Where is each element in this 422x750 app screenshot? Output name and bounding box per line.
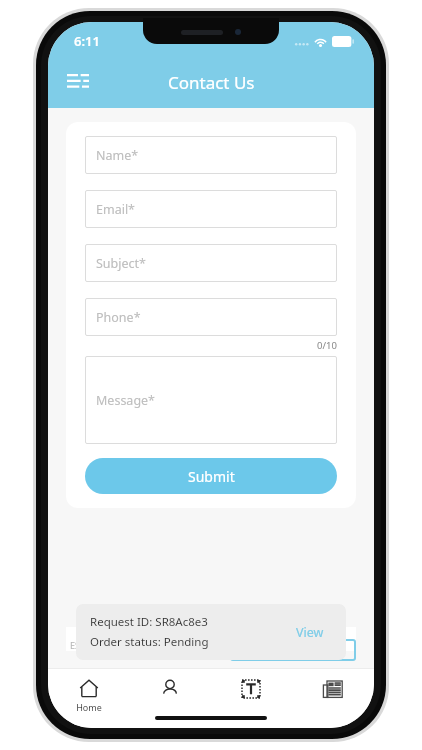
staticText: 0/10 [317,339,337,352]
button[interactable]: News [292,668,374,728]
staticText: Name* [96,147,139,164]
button[interactable] [230,639,356,661]
staticText: Message* [96,392,156,409]
button[interactable]: Message* [85,356,337,444]
staticText: Submit [188,467,235,486]
button[interactable]: Text [210,668,292,728]
button[interactable]: Phone* [85,298,337,336]
button[interactable]: Home [48,668,129,728]
button[interactable]: Subject* [85,244,337,282]
staticText: Request ID: SR8Ac8e3 [90,614,208,630]
staticText: Contact Us [168,71,255,94]
button[interactable]: Request ID: SR8Ac8e3 [76,604,346,660]
button[interactable]: Submit [85,458,337,494]
staticText: Subject* [96,255,146,272]
button[interactable]: Profile [129,668,210,728]
staticText: 6:11 [74,32,100,50]
button[interactable]: Name* [85,136,337,174]
button[interactable]: Menu [56,60,100,104]
staticText: Email* [96,201,135,218]
staticText: Phone* [96,309,141,326]
staticText: ESN Product: Spare Parts [70,639,176,651]
staticText: Home [76,701,102,713]
staticText: View [296,624,324,641]
staticText: Order status: Pending [90,634,209,650]
button[interactable]: Email* [85,190,337,228]
